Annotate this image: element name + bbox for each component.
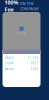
staticText: $384 — [30, 67, 38, 71]
staticText: Balance — [4, 56, 14, 59]
staticText: 100% Fee — [4, 0, 18, 13]
staticText: $1,204 — [27, 56, 38, 59]
staticText: ON THE COMPANY — [19, 1, 38, 11]
staticText: Income — [4, 61, 14, 65]
staticText: Savings — [4, 67, 13, 71]
staticText: fintech — [16, 32, 26, 35]
staticText: $820 — [30, 61, 38, 65]
